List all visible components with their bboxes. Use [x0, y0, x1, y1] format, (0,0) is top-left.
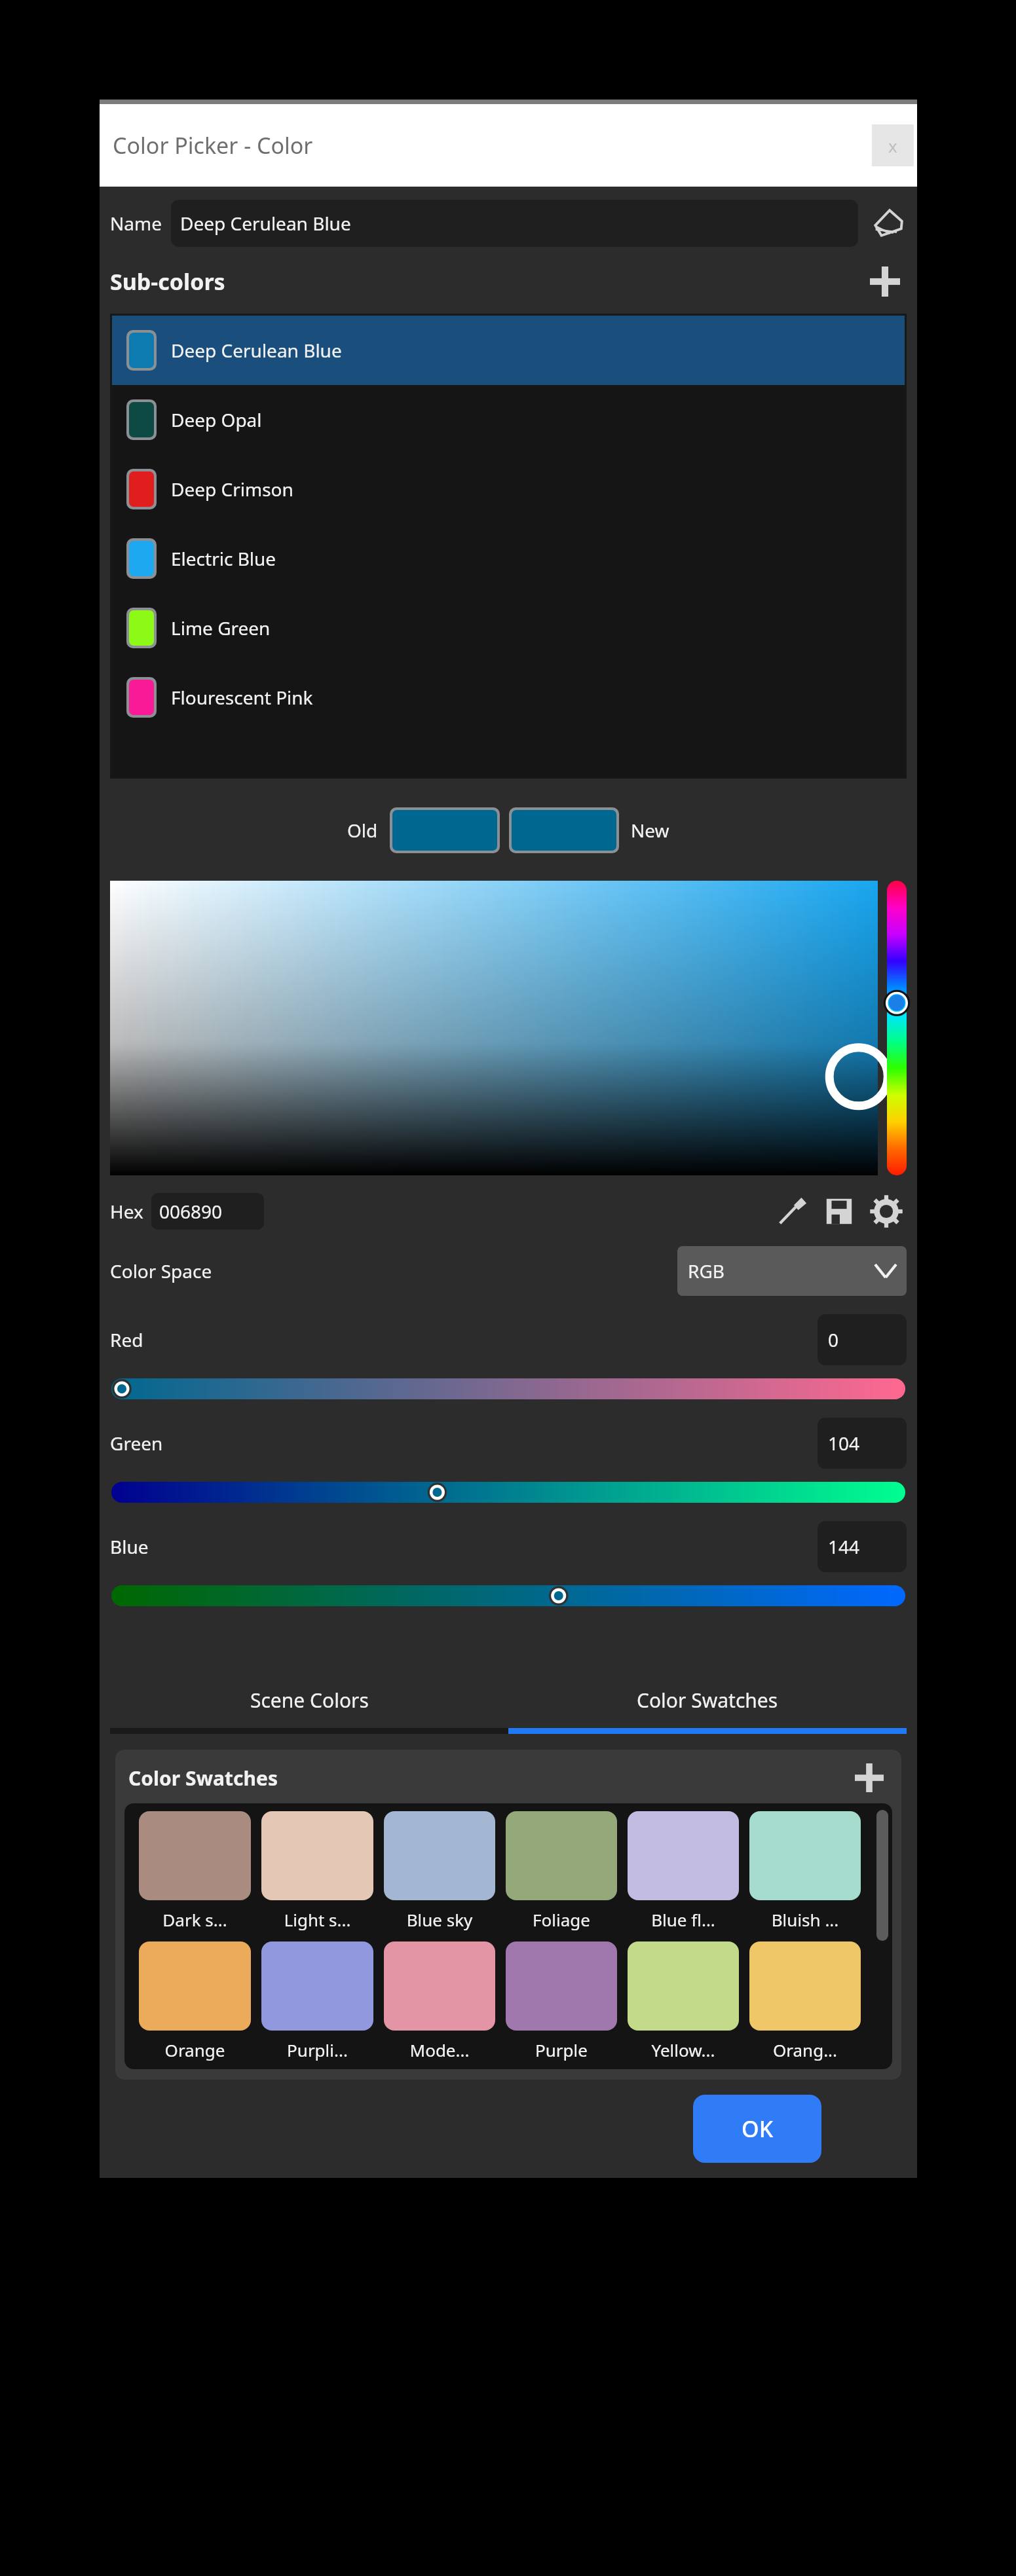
button[interactable]: Bluish ... [744, 1811, 866, 1931]
button[interactable]: Hue slider [887, 881, 907, 1175]
button[interactable]: 0 [818, 1314, 907, 1365]
button[interactable] [512, 810, 616, 851]
staticText: Green [110, 1431, 163, 1456]
staticText: Scene Colors [250, 1687, 369, 1714]
button[interactable]: Electric Blue [112, 524, 905, 593]
button[interactable]: Dark s... [134, 1811, 256, 1931]
staticText: Blue [110, 1534, 149, 1559]
button[interactable]: Add sub-color [865, 261, 905, 302]
button[interactable]: Orange [134, 1941, 256, 2061]
button[interactable]: Blue fl... [622, 1811, 744, 1931]
staticText: Color Space [110, 1259, 212, 1283]
button[interactable]: Add swatch [850, 1759, 888, 1797]
button[interactable] [392, 810, 497, 851]
button[interactable]: 006890 [151, 1193, 264, 1230]
staticText: Sub-colors [110, 267, 225, 297]
staticText: Foliage [500, 1908, 622, 1931]
staticText: Deep Opal [171, 407, 262, 432]
button[interactable]: Scene Colors [110, 1672, 508, 1728]
staticText: Orange [134, 2038, 256, 2061]
staticText: Orang... [744, 2038, 866, 2061]
staticText: Blue sky [379, 1908, 500, 1931]
staticText: Color Picker - Color [113, 130, 313, 160]
button[interactable]: Yellow... [622, 1941, 744, 2061]
staticText: Mode... [379, 2038, 500, 2061]
button[interactable]: Blue slider [111, 1585, 905, 1606]
button[interactable]: Pick color from palette [867, 202, 909, 244]
staticText: Bluish ... [744, 1908, 866, 1931]
button[interactable]: OK [693, 2095, 821, 2163]
button[interactable]: Lime Green [112, 593, 905, 663]
button[interactable]: Saturation and value field [110, 881, 878, 1175]
staticText: Deep Crimson [171, 477, 293, 502]
button[interactable]: Foliage [500, 1811, 622, 1931]
button[interactable]: Color Swatches [508, 1672, 907, 1728]
button[interactable]: Deep Opal [112, 385, 905, 454]
button[interactable]: Deep Cerulean Blue [112, 316, 905, 385]
button[interactable]: Purpli... [256, 1941, 379, 2061]
staticText: 104 [828, 1431, 860, 1456]
staticText: Name [110, 211, 162, 236]
button[interactable]: 104 [818, 1418, 907, 1469]
staticText: Purple [500, 2038, 622, 2061]
staticText: Deep Cerulean Blue [171, 338, 342, 363]
staticText: Color Swatches [637, 1687, 778, 1714]
staticText: Deep Cerulean Blue [180, 211, 351, 236]
staticText: x [888, 134, 897, 157]
button[interactable]: RGB [677, 1246, 907, 1296]
button[interactable]: Purple [500, 1941, 622, 2061]
button[interactable]: Orang... [744, 1941, 866, 2061]
staticText: New [631, 818, 669, 843]
button[interactable]: Light s... [256, 1811, 379, 1931]
button[interactable]: Eyedropper [773, 1192, 811, 1230]
staticText: Lime Green [171, 616, 271, 640]
button[interactable]: Mode... [379, 1941, 500, 2061]
button[interactable]: 144 [818, 1521, 907, 1572]
staticText: RGB [688, 1259, 725, 1283]
staticText: Light s... [256, 1908, 379, 1931]
button[interactable]: Flourescent Pink [112, 663, 905, 732]
staticText: Flourescent Pink [171, 685, 313, 710]
staticText: Blue fl... [622, 1908, 744, 1931]
staticText: 144 [828, 1534, 860, 1559]
button[interactable]: Red slider [111, 1378, 905, 1399]
staticText: Old [347, 818, 378, 843]
button[interactable]: Close [872, 124, 914, 166]
staticText: Dark s... [134, 1908, 256, 1931]
staticText: Hex [110, 1199, 143, 1224]
staticText: Red [110, 1327, 143, 1352]
button[interactable]: Green slider [111, 1482, 905, 1503]
staticText: Purpli... [256, 2038, 379, 2061]
staticText: 0 [828, 1327, 839, 1352]
button[interactable]: Settings [867, 1192, 905, 1230]
button[interactable]: Deep Cerulean Blue [171, 200, 858, 247]
staticText: Color Swatches [128, 1765, 278, 1792]
staticText: OK [742, 2114, 774, 2144]
button[interactable]: Save color [820, 1192, 858, 1230]
staticText: Electric Blue [171, 546, 276, 571]
staticText: 006890 [159, 1199, 223, 1224]
staticText: Yellow... [622, 2038, 744, 2061]
button[interactable]: Blue sky [379, 1811, 500, 1931]
button[interactable]: Deep Crimson [112, 454, 905, 524]
